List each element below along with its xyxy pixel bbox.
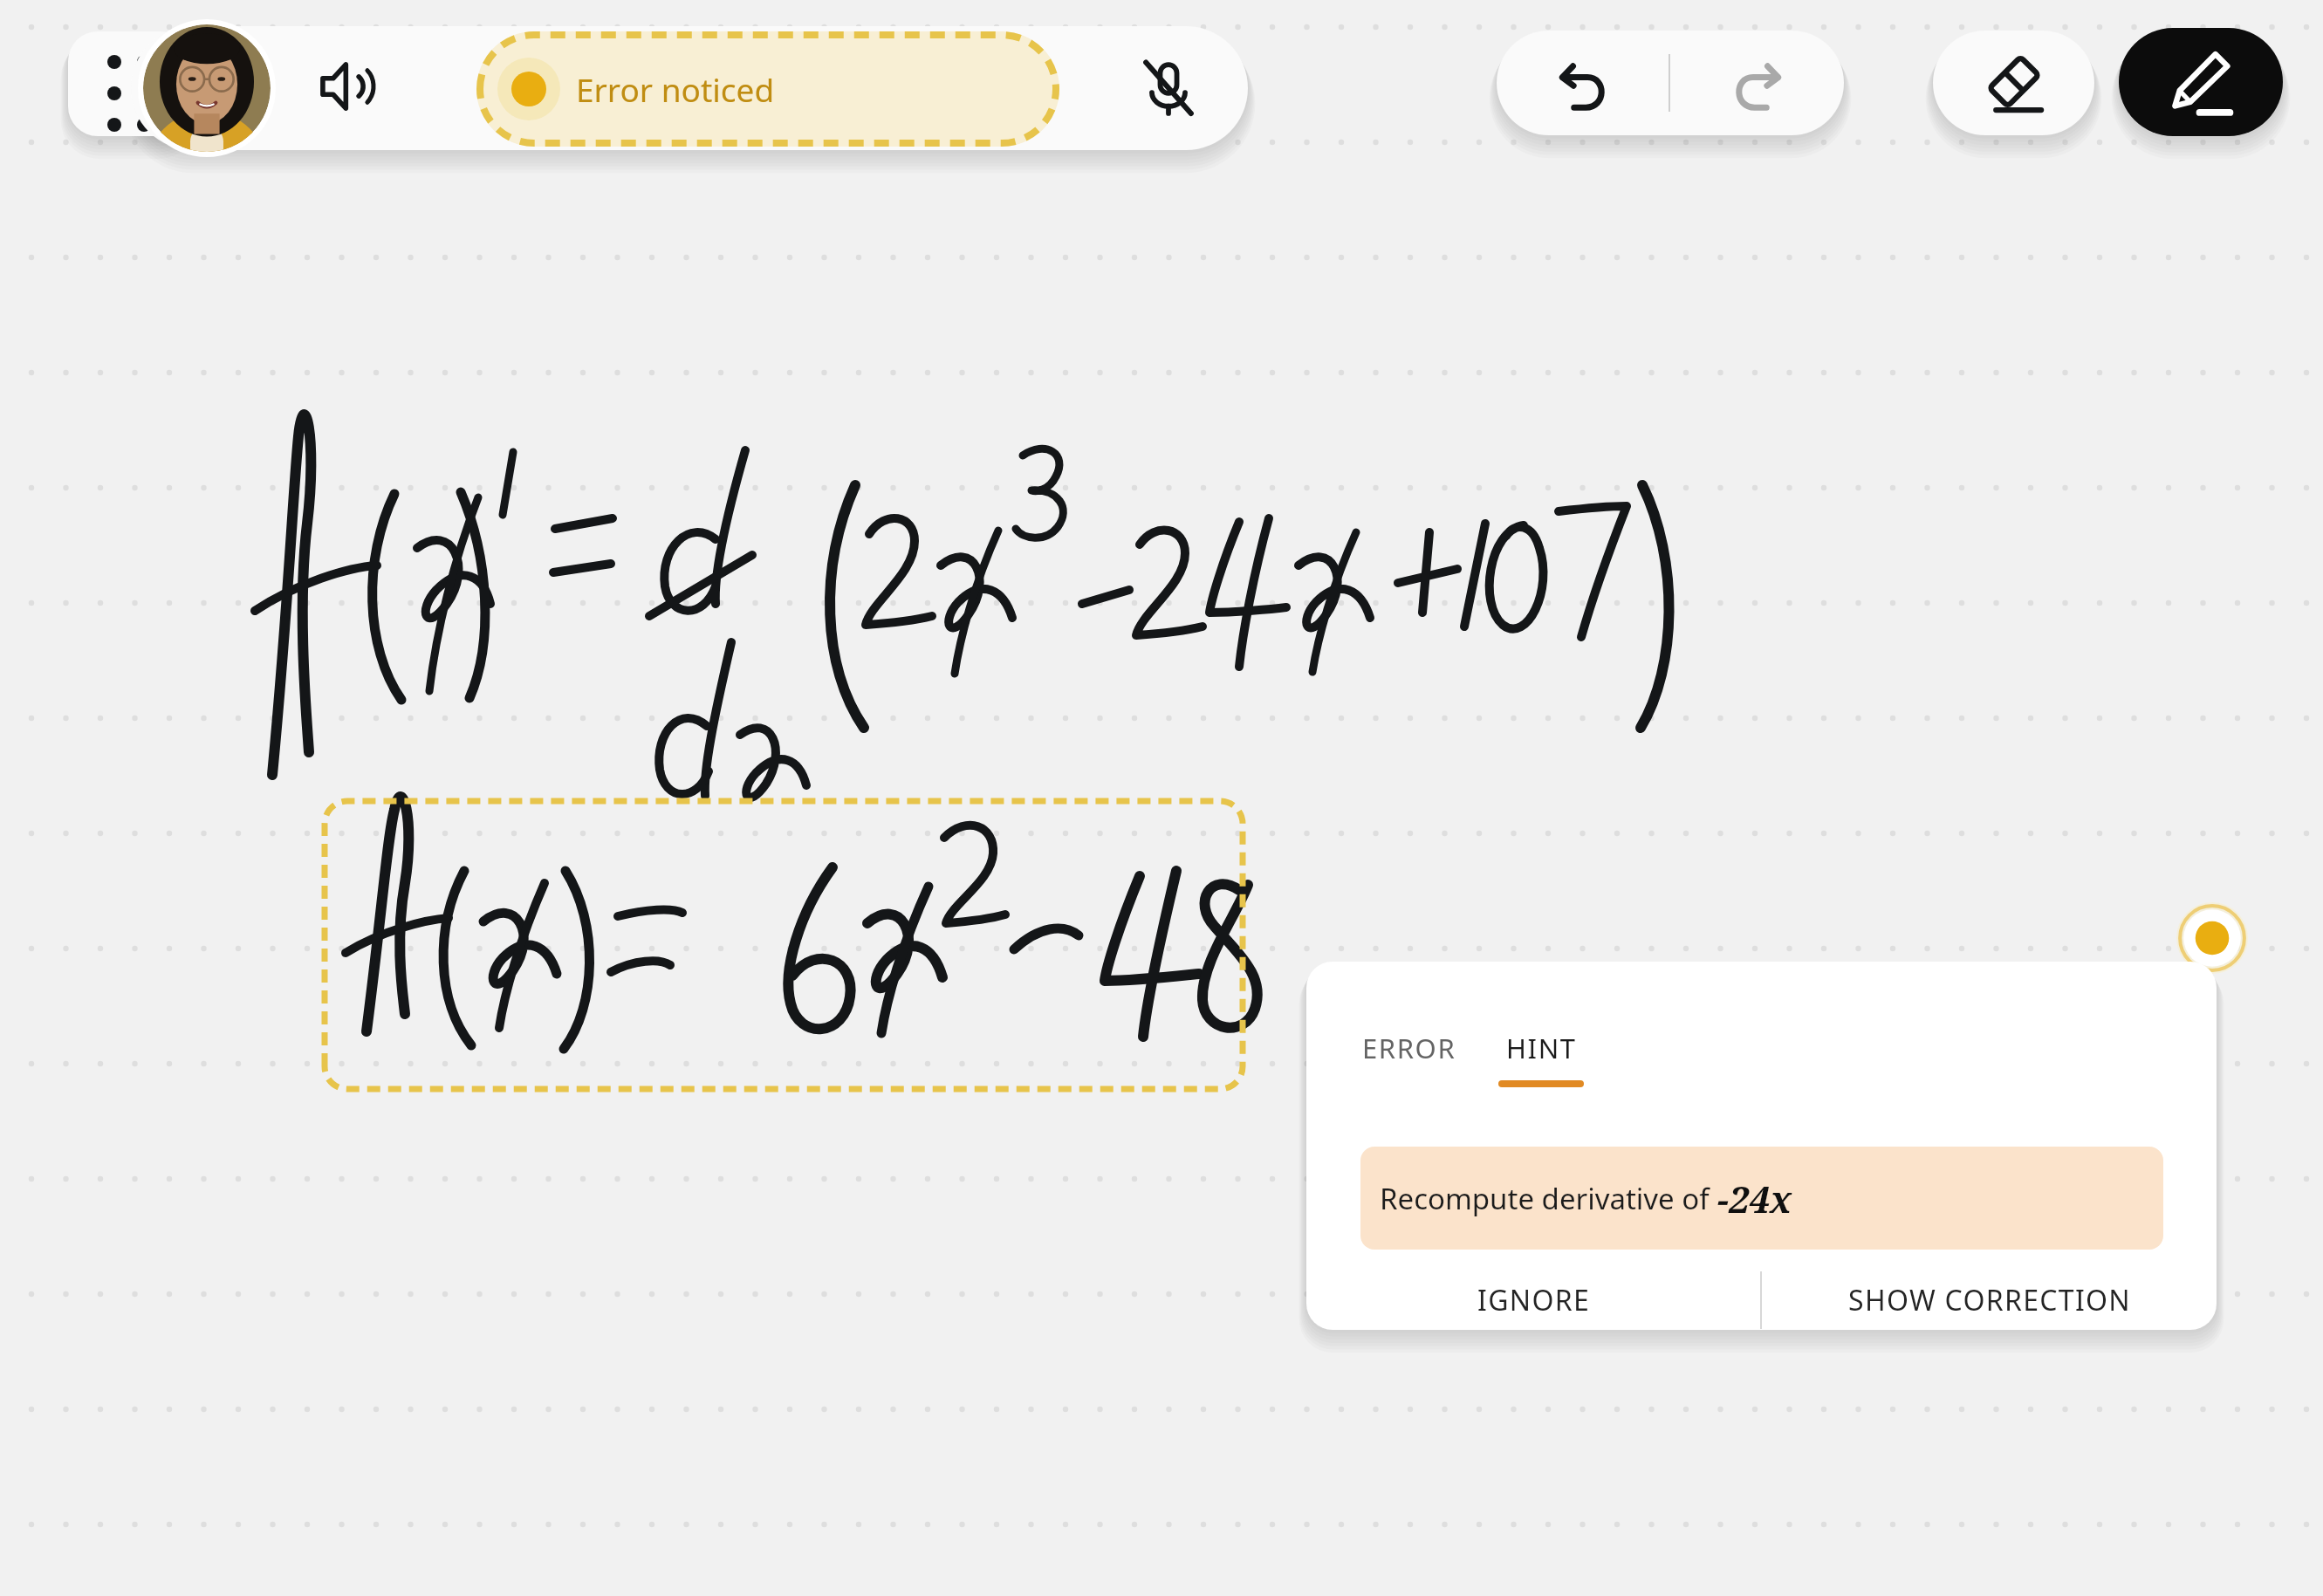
staticText: Error noticed — [576, 67, 775, 111]
button[interactable]: HINT — [1501, 1024, 1582, 1072]
button[interactable]: SHOW CORRECTION — [1762, 1265, 2217, 1330]
button[interactable]: Pen — [2119, 28, 2283, 136]
button[interactable]: Microphone muted — [1120, 38, 1217, 136]
button[interactable]: Error noticed — [476, 31, 1059, 147]
button[interactable]: Undo — [1497, 31, 1669, 135]
staticText: SHOW CORRECTION — [1848, 1281, 2131, 1319]
button[interactable]: Recompute derivative of — [1360, 1147, 2163, 1250]
button[interactable]: Error marker — [2176, 902, 2248, 974]
staticText: −24x — [1717, 1174, 1792, 1223]
button[interactable]: Speaker — [295, 37, 394, 136]
staticText: HINT — [1506, 1030, 1577, 1066]
staticText: Recompute derivative of — [1380, 1179, 1717, 1218]
button[interactable]: Account — [143, 24, 271, 152]
button[interactable]: Eraser — [1933, 31, 2094, 135]
staticText: ERROR — [1362, 1030, 1456, 1066]
button[interactable]: Redo — [1671, 31, 1844, 135]
button[interactable]: IGNORE — [1306, 1265, 1760, 1330]
staticText: IGNORE — [1477, 1281, 1590, 1319]
button[interactable]: Drag handle — [68, 31, 190, 136]
button[interactable]: ERROR — [1357, 1024, 1462, 1072]
